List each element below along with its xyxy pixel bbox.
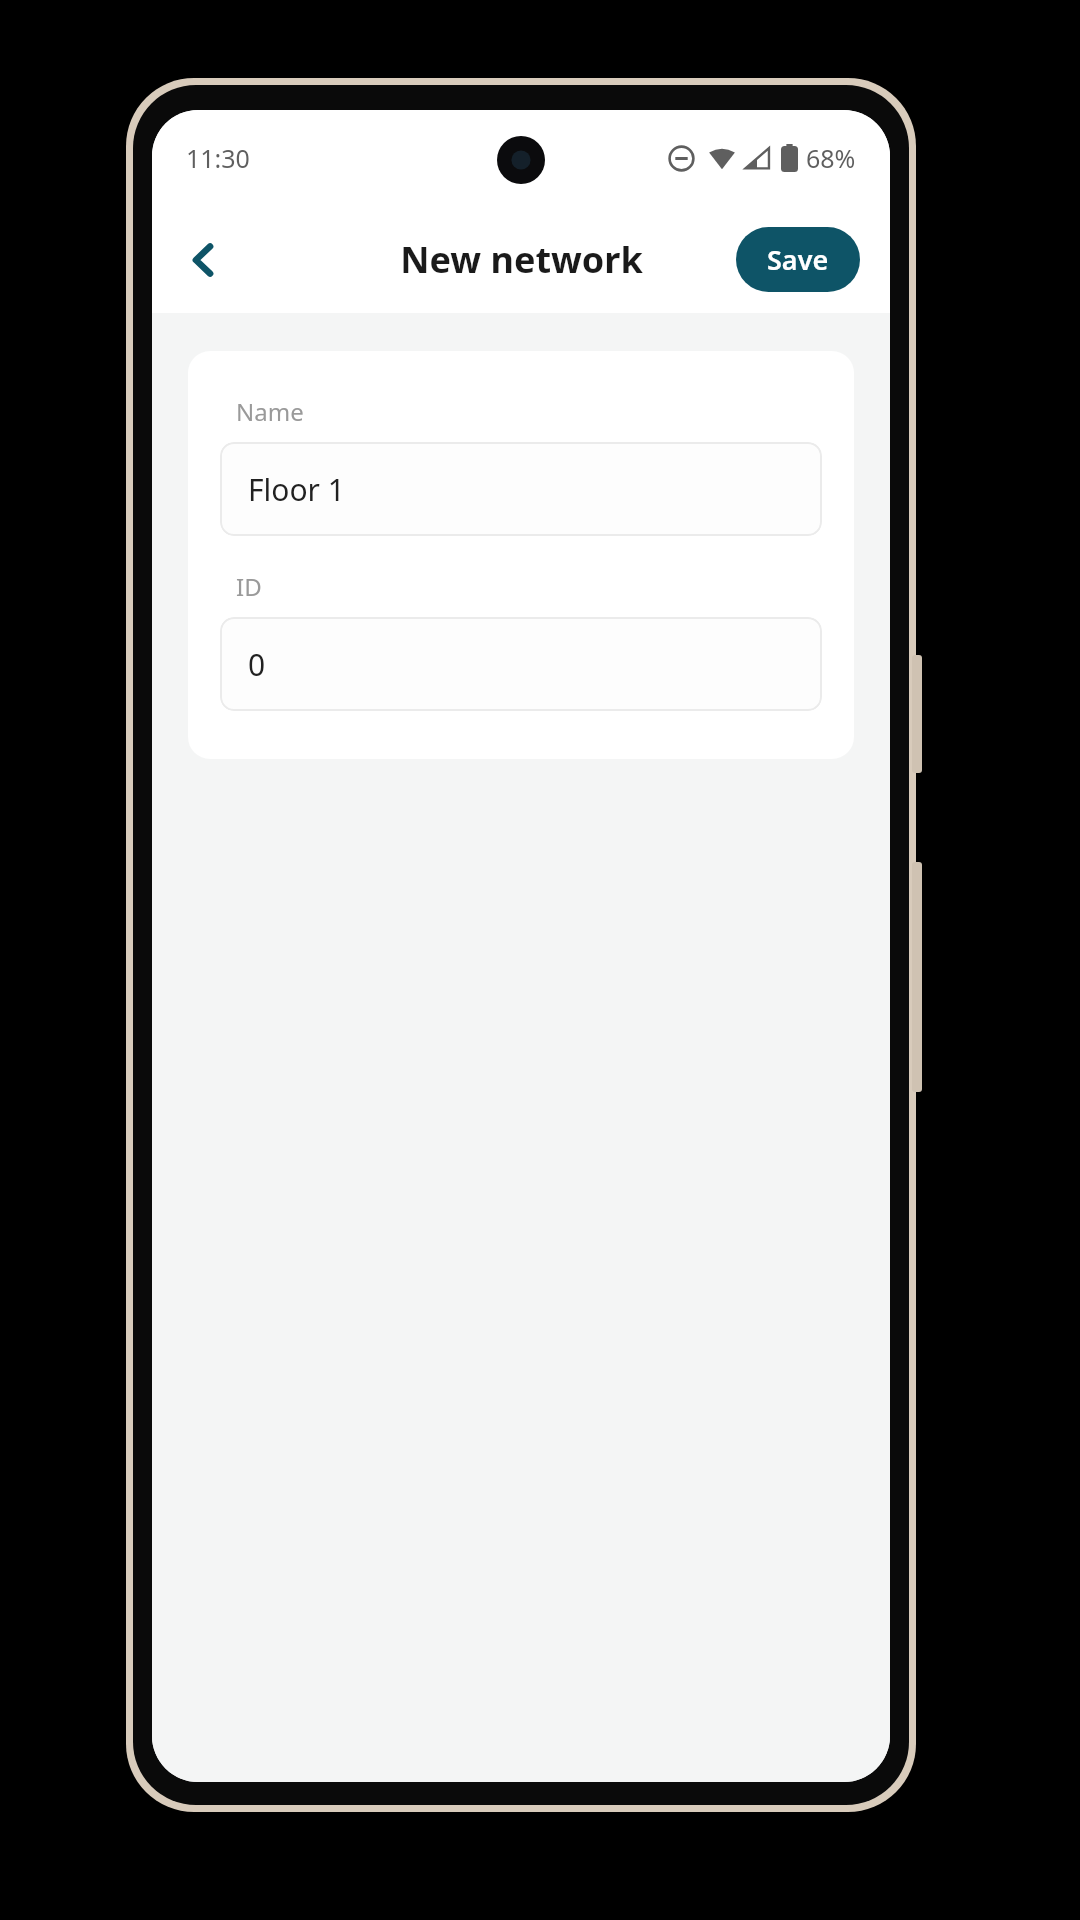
staticText: Floor 1 bbox=[248, 469, 345, 510]
staticText: 68% bbox=[806, 141, 856, 175]
staticText: Name bbox=[236, 395, 304, 428]
staticText: Save bbox=[767, 241, 829, 278]
button[interactable]: 0 bbox=[220, 617, 822, 711]
staticText: ID bbox=[236, 570, 262, 603]
staticText: 11:30 bbox=[186, 141, 250, 175]
staticText: 0 bbox=[248, 644, 266, 685]
button[interactable]: Save bbox=[736, 227, 860, 292]
button[interactable]: Back bbox=[168, 224, 240, 296]
button[interactable]: Floor 1 bbox=[220, 442, 822, 536]
staticText: New network bbox=[400, 235, 643, 284]
